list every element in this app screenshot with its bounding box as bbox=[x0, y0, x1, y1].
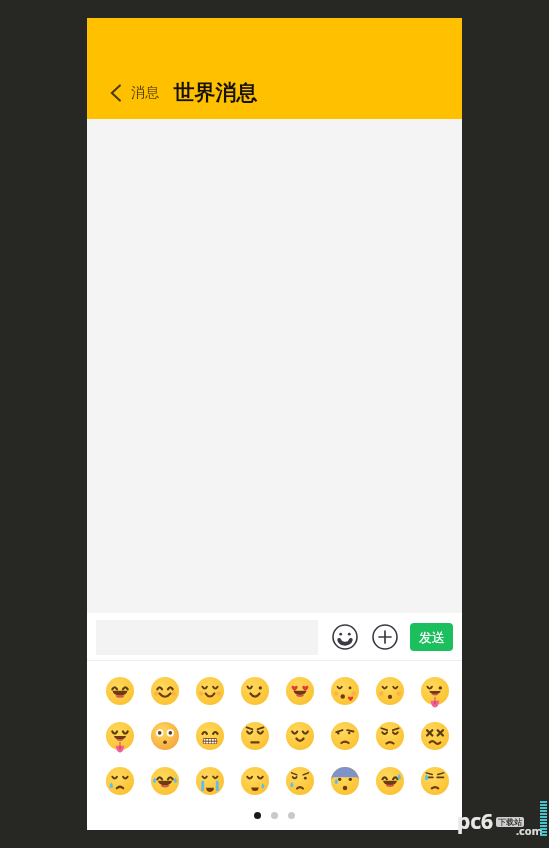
button[interactable]: Emoji bbox=[328, 620, 362, 654]
button[interactable]: KISS bbox=[374, 675, 405, 706]
button[interactable]: KISSHEART bbox=[329, 675, 360, 706]
button[interactable]: UNAMUSED bbox=[329, 720, 360, 751]
button[interactable]: WORRIED bbox=[284, 765, 315, 796]
button[interactable]: SWEATGRIN bbox=[374, 765, 405, 796]
button[interactable]: COLDSWEAT bbox=[329, 765, 360, 796]
staticText: .com bbox=[516, 823, 543, 838]
button[interactable]: SMILE bbox=[149, 675, 180, 706]
button[interactable]: CONFOUNDED bbox=[419, 720, 450, 751]
button[interactable]: WINK bbox=[239, 675, 270, 706]
button[interactable]: SWEAT bbox=[419, 765, 450, 796]
staticText: 消息 bbox=[131, 84, 159, 102]
button[interactable]: HEARTEYES bbox=[284, 675, 315, 706]
button[interactable]: RELIEVED bbox=[284, 720, 315, 751]
button[interactable]: 发送 bbox=[410, 623, 453, 651]
staticText: 世界消息 bbox=[173, 80, 257, 106]
button[interactable]: WINKTONGUE bbox=[419, 675, 450, 706]
button[interactable]: GRIN bbox=[104, 675, 135, 706]
other: Back bbox=[109, 83, 123, 103]
button[interactable]: PENSIVE bbox=[239, 720, 270, 751]
button[interactable]: CRY bbox=[104, 765, 135, 796]
button[interactable]: WEARY bbox=[239, 765, 270, 796]
button[interactable]: RELAXED bbox=[194, 675, 225, 706]
staticText: 下载站 bbox=[498, 817, 522, 827]
button[interactable]: JOY bbox=[149, 765, 180, 796]
staticText: pc6 bbox=[457, 807, 494, 836]
button[interactable]: Back bbox=[105, 79, 163, 107]
button[interactable]: FLUSHED bbox=[149, 720, 180, 751]
button[interactable]: SQUINTTONGUE bbox=[104, 720, 135, 751]
button[interactable]: DISAPPOINTED bbox=[374, 720, 405, 751]
button[interactable]: Add bbox=[368, 620, 402, 654]
staticText: 发送 bbox=[419, 629, 445, 645]
button[interactable]: GRIMACE bbox=[194, 720, 225, 751]
button[interactable]: SOB bbox=[194, 765, 225, 796]
